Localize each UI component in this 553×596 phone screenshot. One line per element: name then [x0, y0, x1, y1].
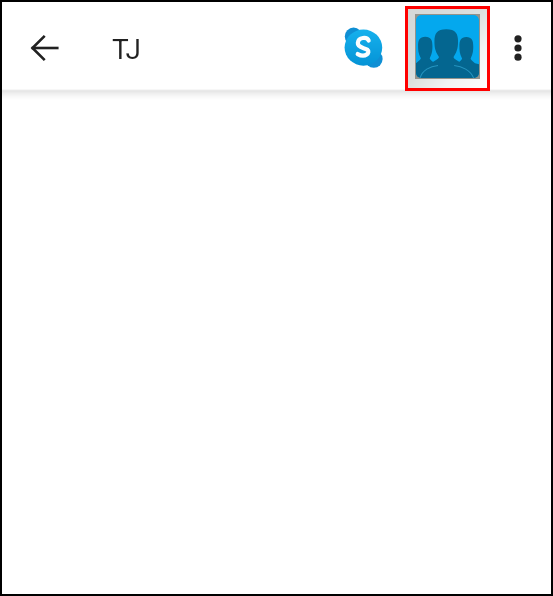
- staticText: TJ: [112, 33, 141, 66]
- button[interactable]: Skype: [340, 24, 386, 70]
- button[interactable]: Back: [22, 25, 67, 70]
- button[interactable]: Group avatar: [405, 6, 490, 91]
- button[interactable]: More options: [495, 25, 540, 70]
- button[interactable]: TJ: [106, 26, 150, 72]
